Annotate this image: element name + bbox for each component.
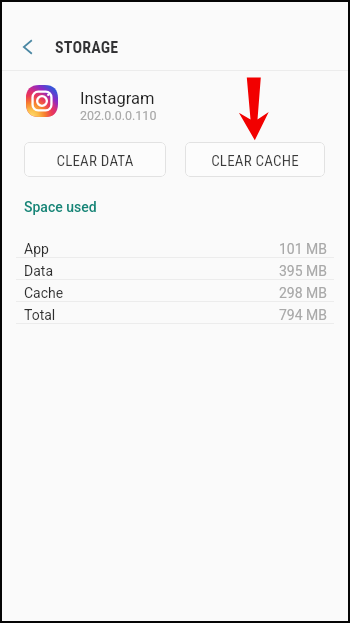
button[interactable]: CLEAR CACHE	[185, 142, 325, 177]
staticText: 395 MB	[279, 263, 328, 279]
staticText: Space used	[24, 199, 97, 215]
button[interactable]: App	[0, 237, 350, 258]
button[interactable]: Back	[11, 31, 43, 63]
staticText: 101 MB	[279, 241, 328, 257]
staticText: Instagram	[80, 89, 155, 108]
button[interactable]: Total	[0, 303, 350, 324]
staticText: App	[24, 241, 49, 257]
staticText: 298 MB	[279, 285, 328, 301]
staticText: CLEAR DATA	[56, 152, 134, 170]
staticText: STORAGE	[55, 38, 119, 57]
staticText: Cache	[24, 285, 64, 301]
staticText: Total	[24, 307, 56, 323]
button[interactable]: Data	[0, 259, 350, 280]
staticText: Data	[24, 263, 53, 279]
button[interactable]: CLEAR DATA	[24, 142, 166, 177]
staticText: 202.0.0.0.110	[80, 108, 157, 123]
staticText: CLEAR CACHE	[211, 152, 299, 170]
staticText: 794 MB	[279, 307, 328, 323]
button[interactable]: Cache	[0, 281, 350, 302]
